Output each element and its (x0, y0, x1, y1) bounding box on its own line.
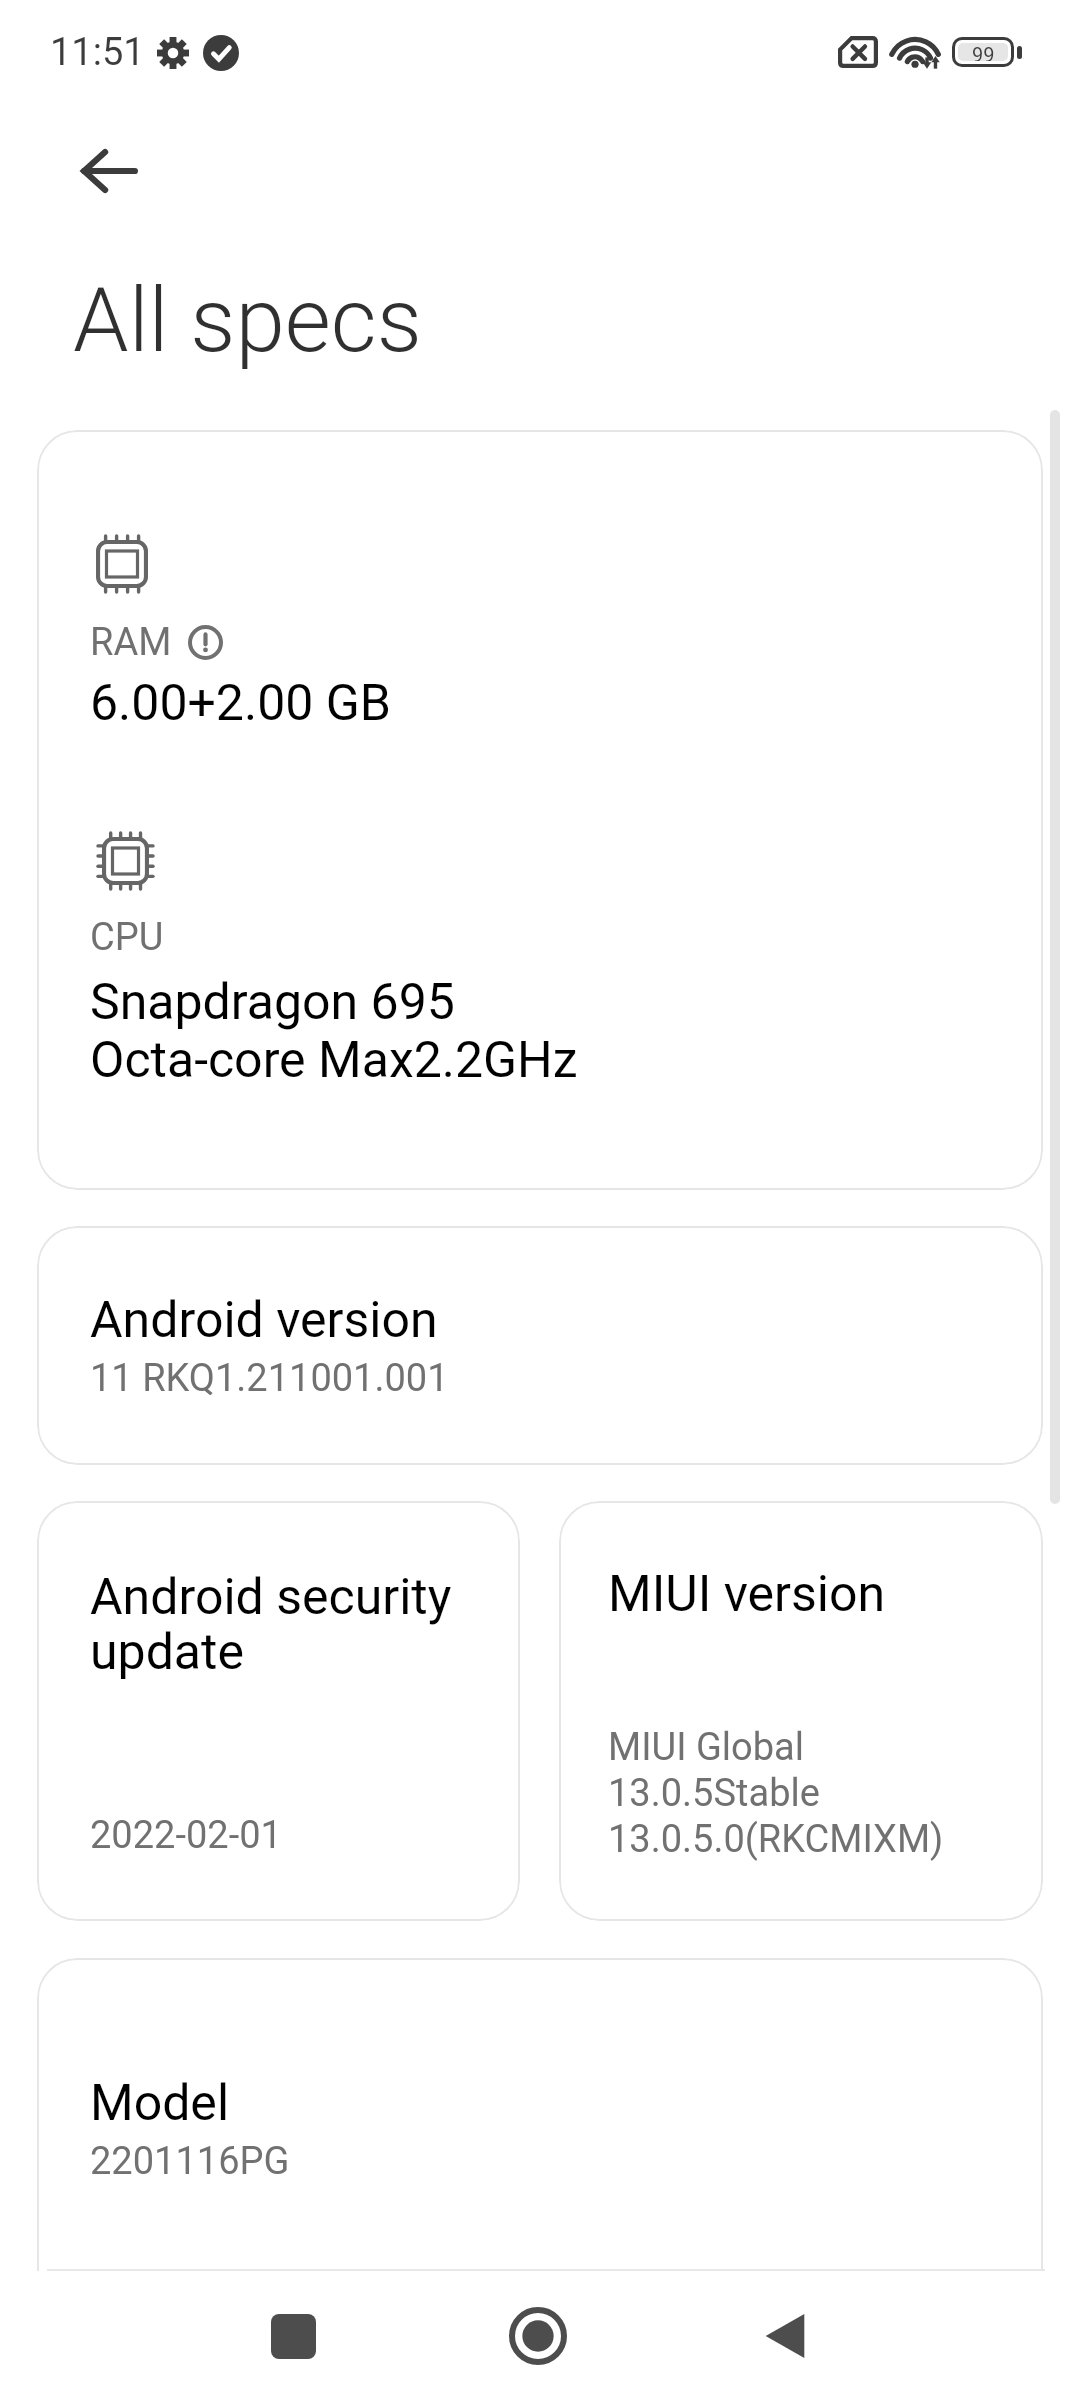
staticText: MIUI Global 13.0.5Stable 13.0.5.0(RKCMIX… (608, 1724, 944, 1862)
button[interactable]: Back (61, 123, 157, 219)
button[interactable]: MIUI version (559, 1501, 1043, 1921)
button[interactable]: Model (37, 1958, 1043, 2378)
staticText: 11 RKQ1.211001.001 (90, 1356, 449, 1401)
staticText: MIUI version (608, 1565, 886, 1624)
staticText: 6.00+2.00 GB (90, 674, 391, 733)
staticText: Model (90, 2074, 230, 2133)
staticText: RAM (90, 620, 172, 665)
button[interactable]: Android security update (37, 1501, 520, 1921)
staticText: CPU (90, 915, 164, 960)
staticText: All specs (73, 268, 422, 372)
staticText: Android security update (90, 1570, 452, 1680)
staticText: 2201116PG (90, 2139, 290, 2184)
button[interactable]: Home (483, 2281, 593, 2391)
button[interactable]: Back (730, 2281, 840, 2391)
button[interactable]: Recent apps (238, 2281, 348, 2391)
button[interactable]: Android version (37, 1226, 1043, 1465)
staticText: 11:51 (50, 30, 145, 75)
staticText: 99 (972, 43, 995, 61)
staticText: Snapdragon 695 Octa-core Max2.2GHz (90, 973, 578, 1089)
button[interactable]: RAM (37, 430, 1043, 1190)
staticText: Android version (90, 1291, 438, 1350)
staticText: 2022-02-01 (90, 1813, 282, 1858)
